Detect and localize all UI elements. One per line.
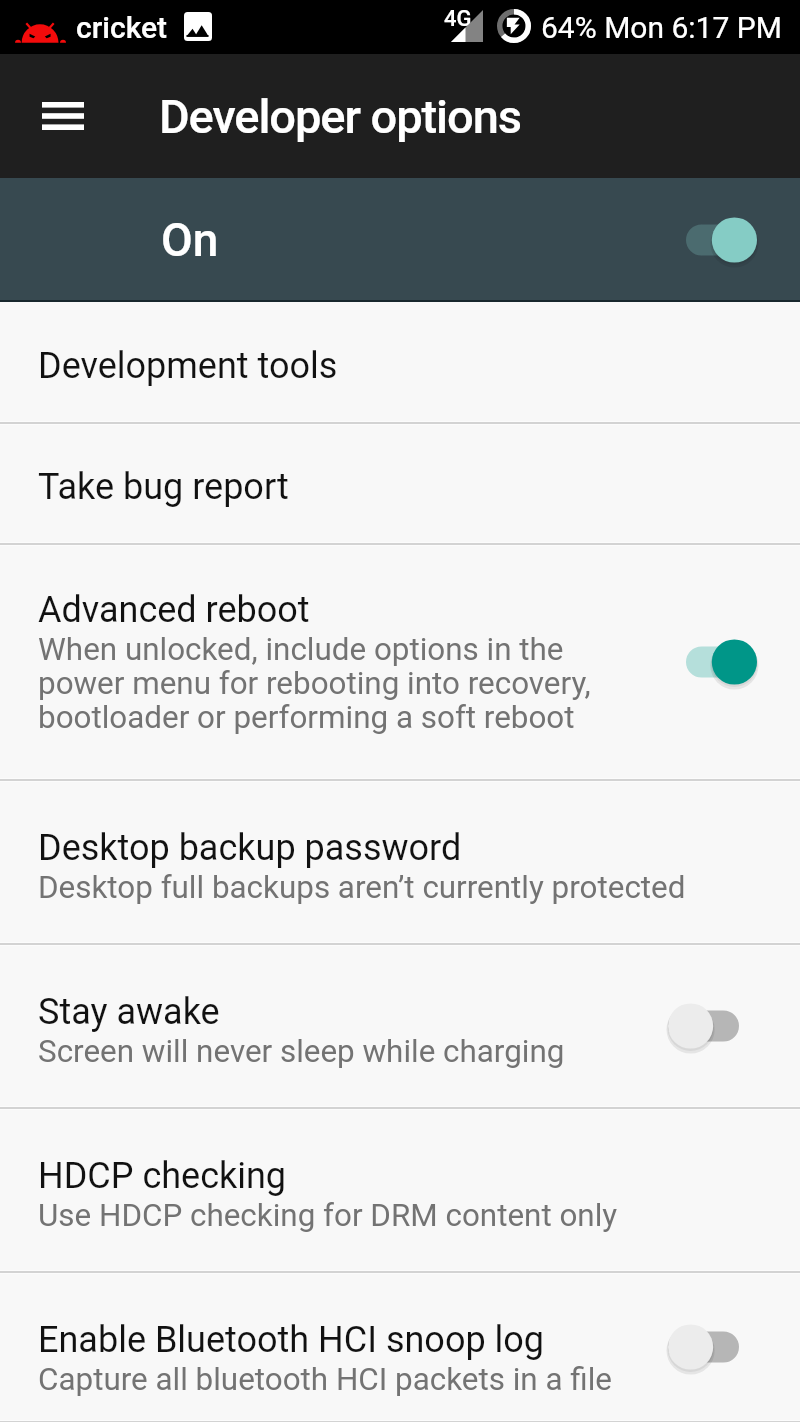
staticText: HDCP checking — [38, 1144, 287, 1199]
other: Developer options master switch — [668, 216, 757, 264]
staticText: Desktop backup password — [38, 816, 462, 871]
button[interactable]: Enable Bluetooth HCI snoop log switch — [668, 1323, 757, 1371]
staticText: Desktop full backups aren’t currently pr… — [38, 871, 686, 905]
button[interactable]: HDCP checking — [0, 1108, 800, 1272]
button[interactable]: Stay awake — [0, 944, 800, 1108]
staticText: 4G — [444, 6, 472, 32]
button[interactable]: Advanced reboot switch — [668, 638, 757, 686]
staticText: Stay awake — [38, 980, 220, 1035]
staticText: On — [161, 213, 219, 267]
button[interactable]: Advanced reboot — [0, 544, 800, 780]
button[interactable]: Enable Bluetooth HCI snoop log — [0, 1272, 800, 1422]
staticText: Take bug report — [38, 455, 289, 510]
button[interactable]: Development tools — [0, 302, 800, 423]
staticText: Use HDCP checking for DRM content only — [38, 1199, 618, 1233]
staticText: Enable Bluetooth HCI snoop log — [38, 1308, 545, 1363]
staticText: cricket — [76, 10, 168, 45]
button[interactable]: Stay awake switch — [668, 1002, 757, 1050]
staticText: Developer options — [159, 89, 521, 144]
staticText: Development tools — [38, 334, 338, 389]
staticText: Advanced reboot — [38, 578, 310, 633]
staticText: When unlocked, include options in the po… — [38, 633, 591, 735]
button[interactable]: Desktop backup password — [0, 780, 800, 944]
button[interactable]: Open navigation drawer — [20, 73, 106, 159]
staticText: 64% Mon 6:17 PM — [541, 10, 782, 45]
button[interactable]: On — [0, 178, 800, 302]
staticText: Capture all bluetooth HCI packets in a f… — [38, 1363, 613, 1397]
button[interactable]: Take bug report — [0, 423, 800, 544]
staticText: Screen will never sleep while charging — [38, 1035, 565, 1069]
